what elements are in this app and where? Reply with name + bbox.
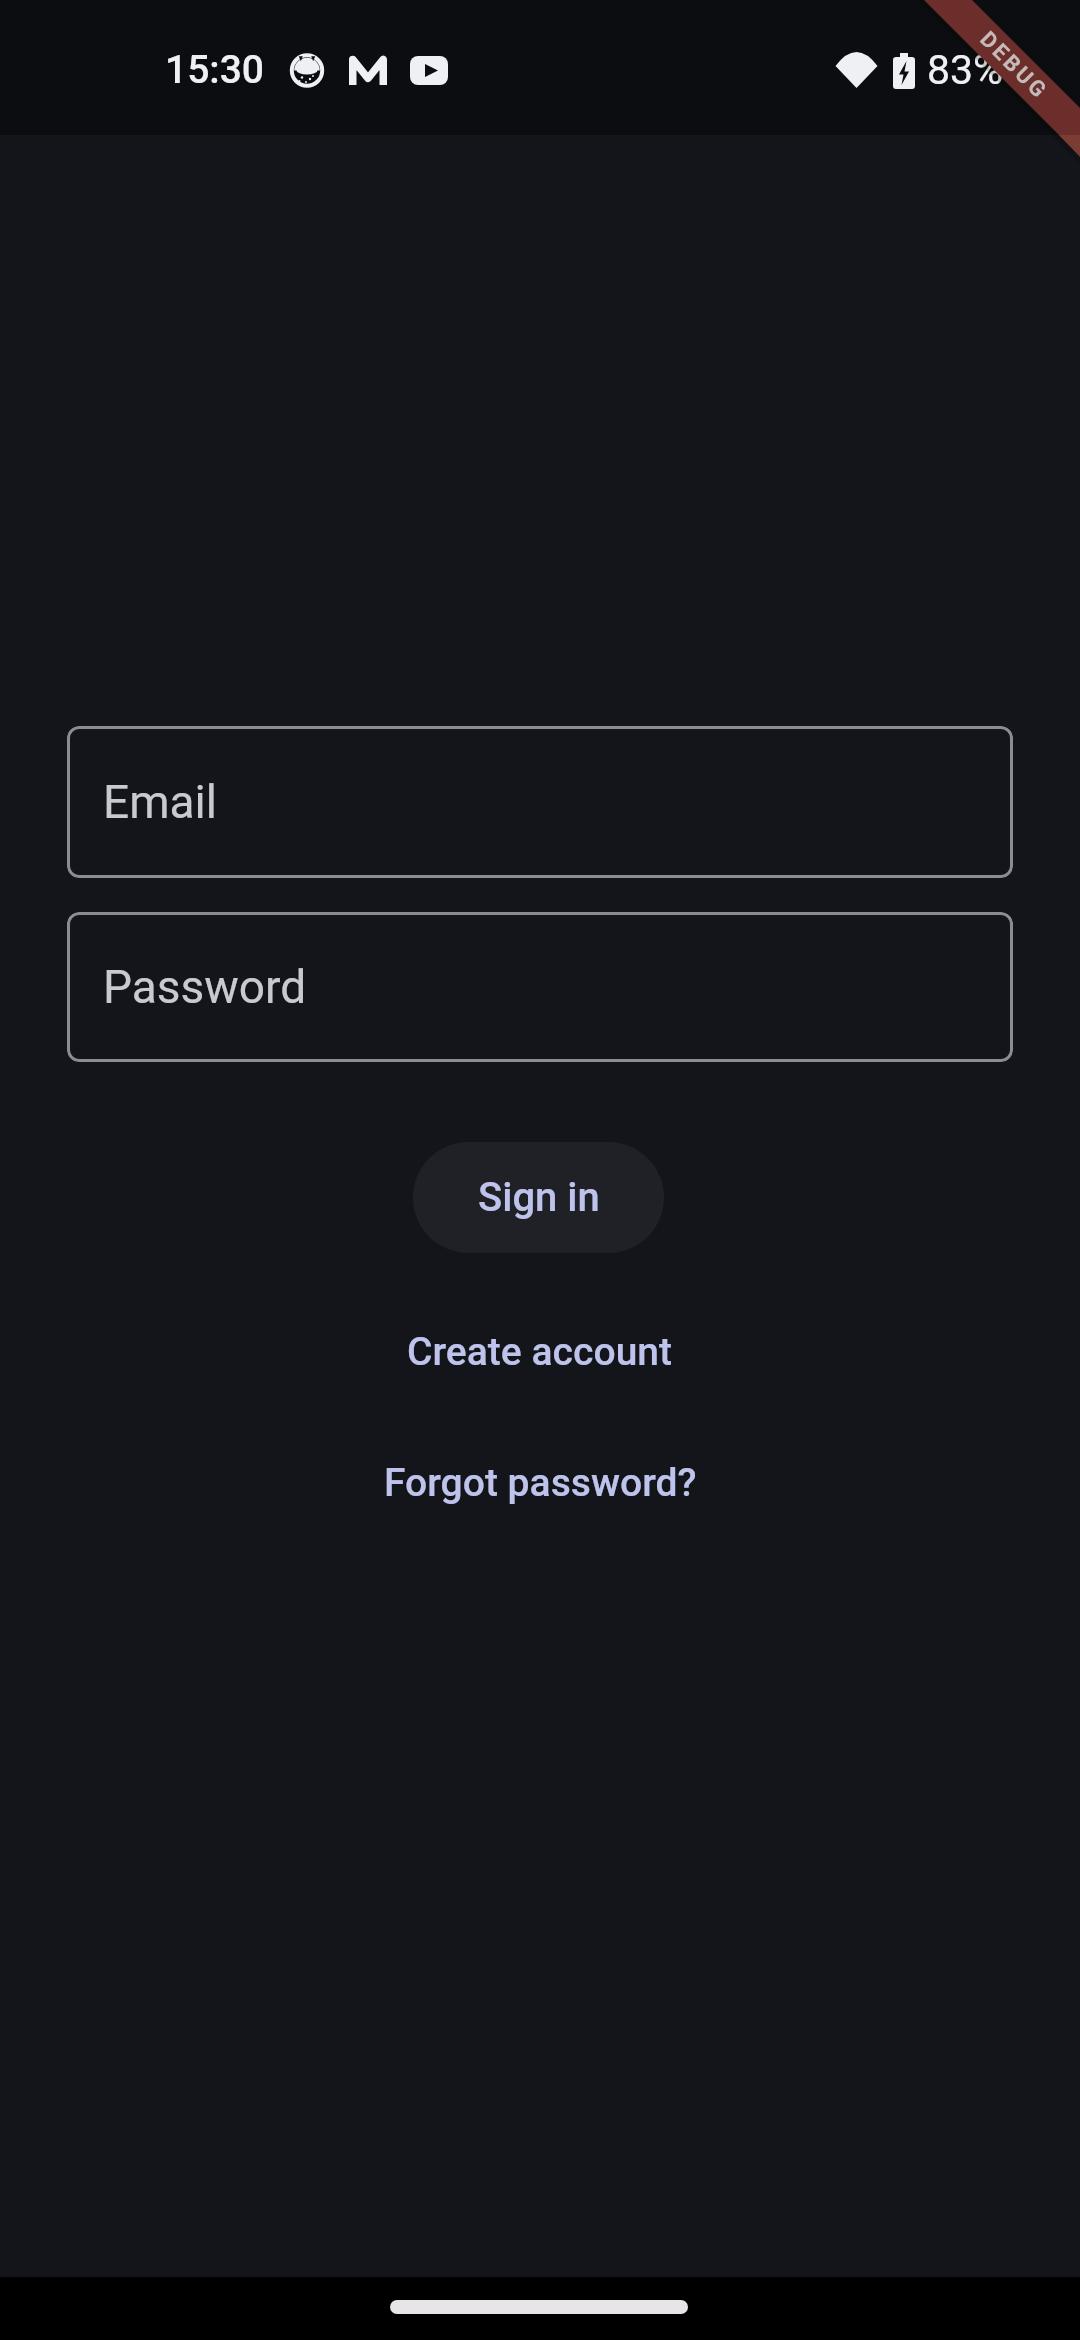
staticText: Email xyxy=(103,775,217,829)
staticText: 83% xyxy=(927,46,1004,94)
staticText: Sign in xyxy=(478,1174,600,1221)
button[interactable]: Password xyxy=(67,912,1013,1062)
staticText: Create account xyxy=(407,1329,673,1375)
staticText: DEBUG xyxy=(974,26,1054,106)
button[interactable]: Forgot password? xyxy=(384,1460,697,1506)
button[interactable]: Sign in xyxy=(413,1142,664,1253)
staticText: 15:30 xyxy=(165,47,265,93)
staticText: Forgot password? xyxy=(384,1460,697,1506)
staticText: Password xyxy=(103,960,307,1014)
button[interactable]: Create account xyxy=(407,1329,673,1375)
button[interactable]: Email xyxy=(67,726,1013,878)
